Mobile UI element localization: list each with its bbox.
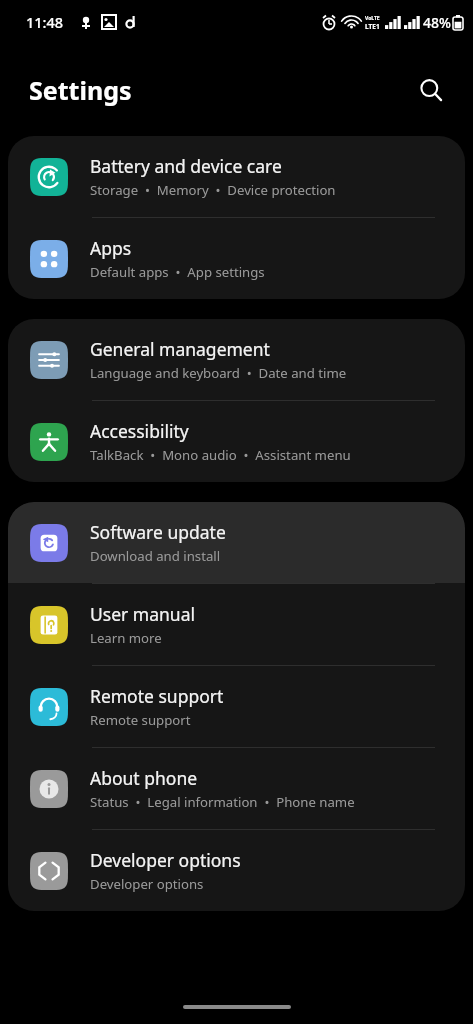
staticText: Remote support (90, 711, 191, 729)
staticText: Remote support (90, 684, 224, 708)
staticText: 48% (423, 13, 451, 32)
staticText: Apps (90, 236, 132, 260)
staticText: Settings (29, 73, 132, 107)
button[interactable]: Developer options (8, 830, 465, 911)
staticText: User manual (90, 602, 195, 626)
staticText: Learn more (90, 629, 162, 647)
staticText: Language and keyboard • Date and time (90, 364, 347, 382)
staticText: LTE1 (365, 22, 380, 31)
button[interactable]: General management (8, 319, 465, 400)
button[interactable]: Accessibility (8, 401, 465, 482)
staticText: Storage • Memory • Device protection (90, 181, 336, 199)
staticText: Status • Legal information • Phone name (90, 793, 355, 811)
staticText: Software update (90, 520, 226, 544)
button[interactable]: Remote support (8, 666, 465, 747)
staticText: General management (90, 337, 270, 361)
staticText: Developer options (90, 848, 241, 872)
staticText: Battery and device care (90, 154, 282, 178)
button[interactable]: Search (409, 68, 453, 112)
staticText: Developer options (90, 875, 204, 893)
button[interactable]: Software update (8, 502, 465, 583)
staticText: VoLTE (365, 15, 380, 22)
button[interactable]: Battery and device care (8, 136, 465, 217)
staticText: Accessibility (90, 419, 189, 443)
staticText: About phone (90, 766, 198, 790)
staticText: 11:48 (26, 12, 64, 32)
staticText: Default apps • App settings (90, 263, 265, 281)
button[interactable]: About phone (8, 748, 465, 829)
button[interactable]: User manual (8, 584, 465, 665)
button[interactable]: Apps (8, 218, 465, 299)
staticText: Download and install (90, 547, 221, 565)
staticText: TalkBack • Mono audio • Assistant menu (90, 446, 351, 464)
